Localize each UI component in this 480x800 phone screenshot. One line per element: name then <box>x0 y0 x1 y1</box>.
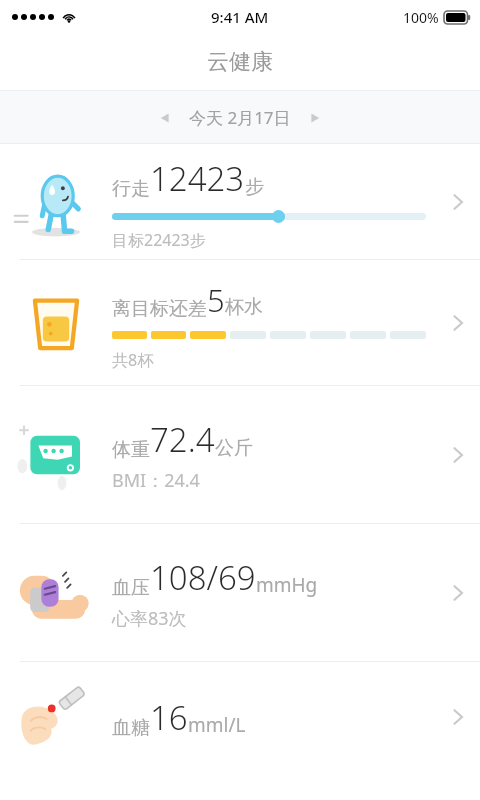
staticText: 12423 <box>150 156 245 201</box>
staticText: 步 <box>245 175 264 199</box>
button[interactable]: 血压 108/69 mmHg <box>0 524 480 661</box>
staticText: 72.4 <box>150 417 215 462</box>
staticText: BMI：24.4 <box>112 468 200 493</box>
staticText: 血压 <box>112 576 150 600</box>
staticText: 5 <box>207 279 225 321</box>
other: Previous day <box>159 112 171 124</box>
staticText: 16 <box>150 695 188 740</box>
staticText: 云健康 <box>207 48 273 76</box>
button[interactable]: Previous day <box>0 90 480 144</box>
staticText: 108/69 <box>150 555 256 600</box>
staticText: 血糖 <box>112 716 150 740</box>
button[interactable]: 体重 72.4 公斤 <box>0 386 480 523</box>
staticText: 今天 2月17日 <box>189 106 291 129</box>
staticText: 体重 <box>112 438 150 462</box>
staticText: 公斤 <box>215 436 253 460</box>
button[interactable]: 行走 12423 步 <box>0 144 480 259</box>
staticText: mmHg <box>256 572 318 598</box>
button[interactable]: 血糖 16 mml/L <box>0 662 480 772</box>
staticText: mml/L <box>188 712 246 738</box>
staticText: 杯水 <box>225 295 263 319</box>
staticText: 心率83次 <box>112 606 187 631</box>
staticText: 9:41 AM <box>211 7 269 27</box>
staticText: 共8杯 <box>112 349 154 371</box>
button[interactable]: 离目标还差5杯水 <box>0 260 480 385</box>
other: Next day <box>309 112 321 124</box>
staticText: 行走 <box>112 177 150 201</box>
staticText: 100% <box>403 8 439 27</box>
staticText: 离目标还差 <box>112 297 207 321</box>
staticText: 目标22423步 <box>112 229 206 251</box>
